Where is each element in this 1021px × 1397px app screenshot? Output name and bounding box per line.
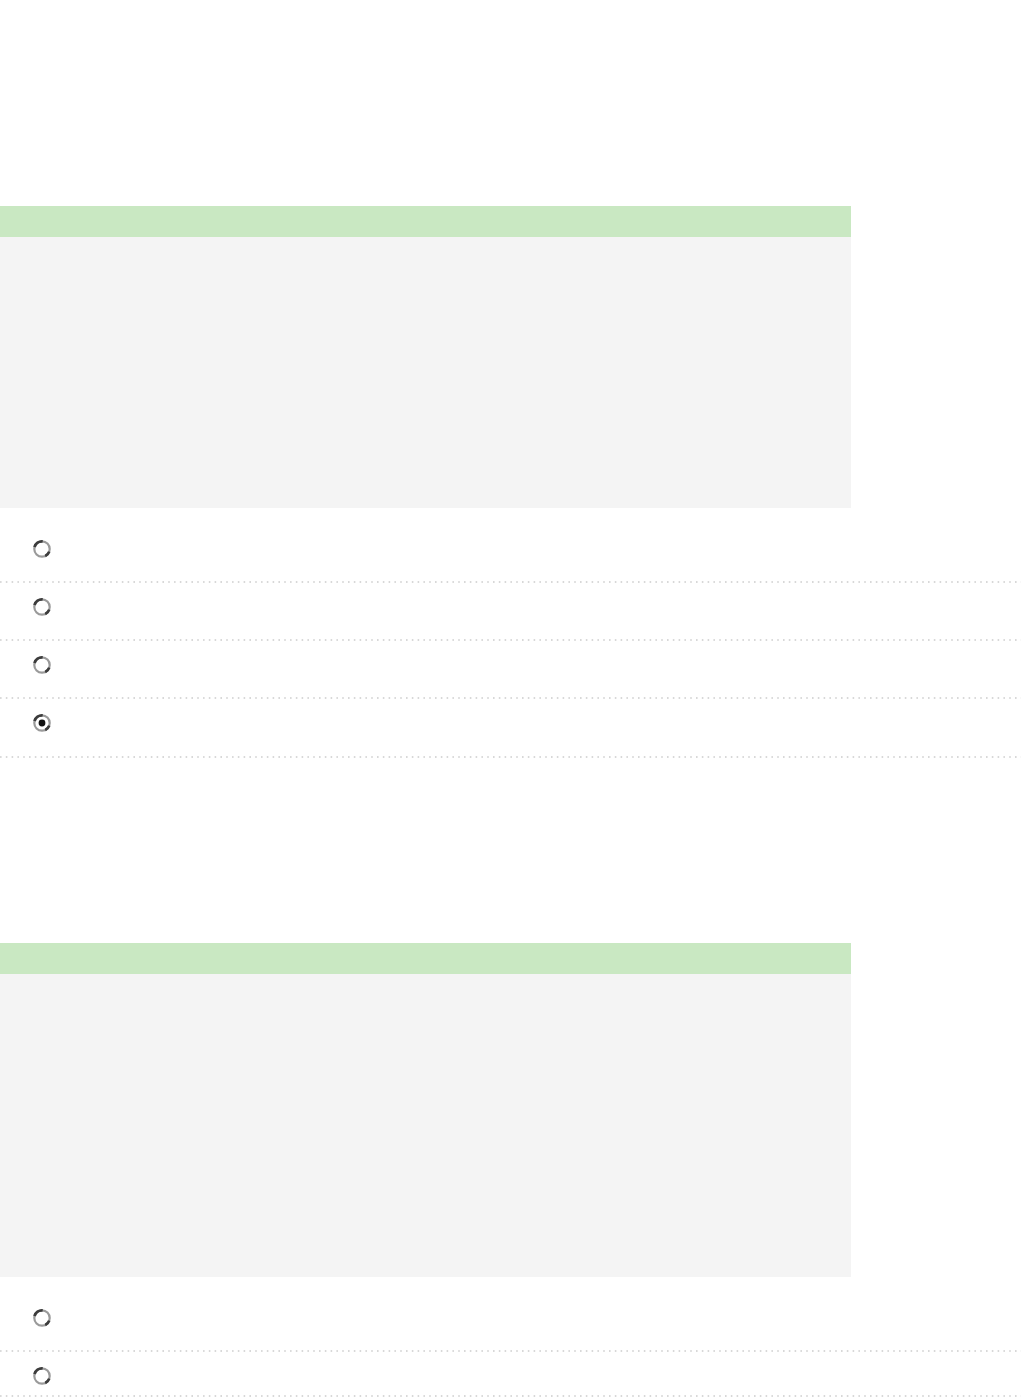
button[interactable]: Option 2 — [0, 1352, 1021, 1397]
button[interactable]: Option 2 — [0, 583, 1021, 641]
button[interactable]: Option 3 — [0, 641, 1021, 699]
button[interactable]: Option 4 — [0, 699, 1021, 758]
button[interactable]: Option 1 — [0, 1294, 1021, 1352]
button[interactable]: Option 1 — [0, 525, 1021, 583]
